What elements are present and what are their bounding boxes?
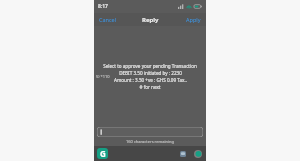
button[interactable]: Settings bbox=[193, 149, 203, 159]
staticText: Reply bbox=[142, 16, 159, 24]
staticText: Apply bbox=[186, 16, 201, 23]
button[interactable]: Apply bbox=[181, 13, 206, 26]
button[interactable]: Reply text field bbox=[97, 127, 203, 137]
button[interactable]: Switch keyboard bbox=[178, 149, 188, 159]
staticText: G bbox=[100, 148, 106, 159]
staticText: Select to approve your pending Transacti… bbox=[103, 63, 197, 69]
staticText: 160 characters remaining bbox=[126, 139, 174, 144]
staticText: DEBIT 3.50 initiated by : 2230 bbox=[119, 70, 182, 76]
staticText: 5) *110 bbox=[96, 74, 206, 79]
staticText: Cancel bbox=[99, 16, 117, 23]
button[interactable]: Cancel bbox=[94, 13, 122, 26]
staticText: # for next bbox=[139, 84, 161, 90]
staticText: 8:17 bbox=[98, 3, 108, 10]
staticText: Amount : 3.50 +ve : GHS 0.09 Tax.. bbox=[114, 77, 187, 83]
button[interactable]: Grammarly keyboard bbox=[97, 148, 108, 159]
